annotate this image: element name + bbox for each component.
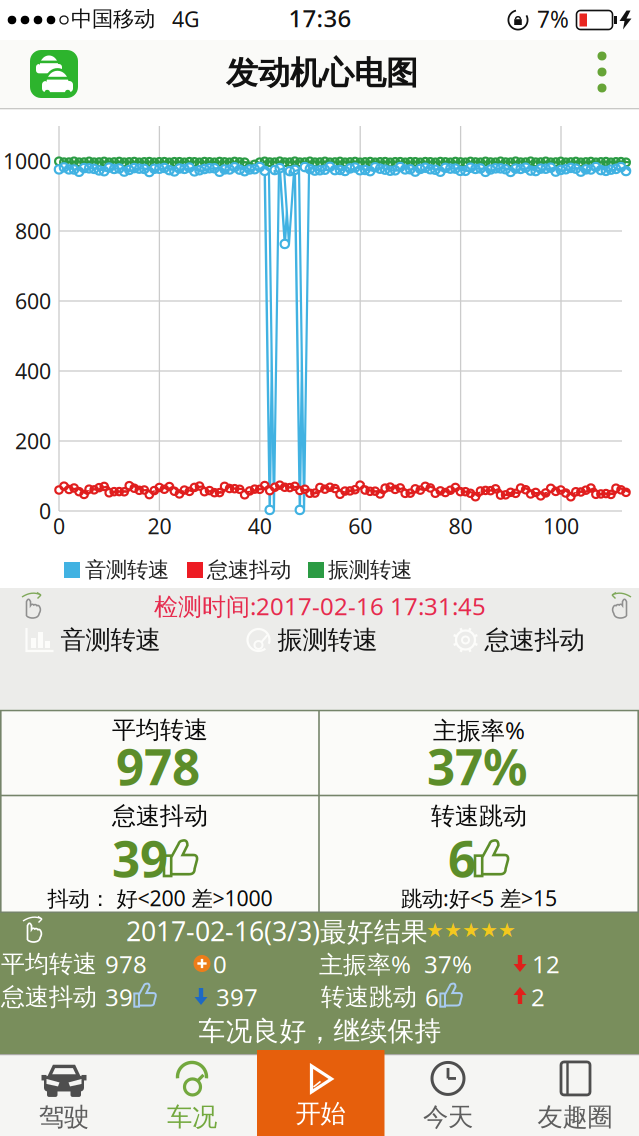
- button[interactable]: 音测转速: [7, 618, 177, 662]
- staticText: 200: [15, 427, 51, 455]
- button[interactable]: 今天: [384, 1056, 511, 1136]
- staticText: 80: [449, 512, 473, 540]
- staticText: 2017-02-16(3/3)最好结果: [126, 913, 428, 949]
- staticText: 4G: [172, 5, 200, 33]
- staticText: 100: [543, 512, 579, 540]
- staticText: 转速跳动: [431, 801, 527, 831]
- staticText: 60: [348, 512, 372, 540]
- staticText: 6: [448, 825, 476, 891]
- staticText: 0: [213, 948, 227, 980]
- button[interactable]: 怠速抖动: [433, 618, 603, 662]
- staticText: 1000: [3, 147, 51, 175]
- staticText: 友趣圈: [537, 1101, 612, 1132]
- staticText: 6: [425, 981, 439, 1013]
- staticText: 转速跳动: [321, 982, 417, 1012]
- staticText: 驾驶: [39, 1101, 89, 1132]
- staticText: 音测转速: [60, 624, 160, 655]
- staticText: 平均转速: [1, 949, 97, 979]
- staticText: 20: [147, 512, 171, 540]
- staticText: 发动机心电图: [226, 53, 418, 93]
- staticText: 开始: [295, 1098, 345, 1129]
- staticText: 12: [532, 948, 560, 980]
- staticText: 17:36: [288, 2, 351, 34]
- staticText: 0: [53, 512, 65, 540]
- staticText: 主振率%: [433, 714, 525, 746]
- staticText: ★★★★★: [426, 919, 516, 941]
- staticText: 振测转速: [277, 624, 377, 655]
- staticText: 中国移动: [71, 6, 155, 32]
- staticText: 978: [116, 733, 200, 799]
- staticText: 跳动:好<5 差>15: [401, 884, 557, 912]
- staticText: 抖动： 好<200 差>1000: [47, 884, 272, 912]
- staticText: 检测时间:2017-02-16 17:31:45: [154, 590, 486, 622]
- staticText: 37%: [424, 948, 472, 980]
- staticText: 怠速抖动: [207, 557, 291, 583]
- button[interactable]: 驾驶: [0, 1056, 127, 1136]
- staticText: 平均转速: [112, 715, 208, 745]
- button[interactable]: 振测转速: [226, 618, 396, 662]
- staticText: 39: [105, 981, 133, 1013]
- staticText: 2: [531, 981, 545, 1013]
- staticText: 车况: [167, 1101, 217, 1132]
- staticText: 怠速抖动: [112, 801, 208, 831]
- staticText: 音测转速: [85, 557, 169, 583]
- button[interactable]: 车况: [128, 1056, 255, 1136]
- staticText: 800: [15, 217, 51, 245]
- staticText: 车况良好，继续保持: [198, 1015, 441, 1047]
- button[interactable]: Menu: [582, 45, 622, 101]
- button[interactable]: 开始: [257, 1056, 384, 1136]
- staticText: 39: [112, 825, 168, 891]
- staticText: 振测转速: [328, 557, 412, 583]
- staticText: 主振率%: [319, 948, 411, 980]
- staticText: 40: [248, 512, 272, 540]
- staticText: 今天: [423, 1101, 473, 1132]
- button[interactable]: App: [30, 50, 78, 98]
- staticText: 7%: [537, 4, 569, 34]
- staticText: 400: [15, 357, 51, 385]
- staticText: 978: [105, 948, 147, 980]
- staticText: 怠速抖动: [1, 982, 97, 1012]
- button[interactable]: 友趣圈: [511, 1056, 638, 1136]
- staticText: 600: [15, 287, 51, 315]
- staticText: 0: [39, 497, 51, 525]
- staticText: 怠速抖动: [484, 624, 584, 655]
- staticText: 397: [216, 981, 258, 1013]
- staticText: 37%: [427, 733, 527, 799]
